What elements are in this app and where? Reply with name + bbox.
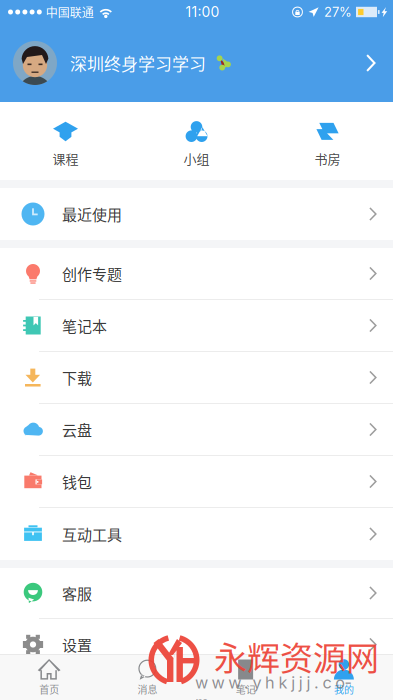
staticText: 消息 xyxy=(137,682,157,696)
staticText: 笔记本 xyxy=(62,315,107,336)
staticText: 云盘 xyxy=(62,419,92,440)
button[interactable]: 我的 xyxy=(295,654,393,700)
staticText: 设置 xyxy=(62,634,92,655)
staticText: 中国联通 xyxy=(46,3,94,21)
button[interactable]: 设置 xyxy=(0,619,393,670)
staticText: 小组 xyxy=(183,149,209,168)
button[interactable]: 课程 xyxy=(0,102,131,180)
staticText: 27% xyxy=(324,4,352,20)
button[interactable]: 小组 xyxy=(131,102,262,180)
staticText: 笔记 xyxy=(236,682,256,696)
button[interactable]: 下载 xyxy=(0,352,393,404)
staticText: 最近使用 xyxy=(62,203,122,225)
button[interactable]: 首页 xyxy=(0,654,98,700)
button[interactable]: 书房 xyxy=(262,102,393,180)
staticText: 书房 xyxy=(314,149,340,168)
button[interactable]: 笔记 xyxy=(196,654,295,700)
button[interactable]: 云盘 xyxy=(0,404,393,456)
staticText: 下载 xyxy=(62,367,92,388)
button[interactable]: 消息 xyxy=(98,654,196,700)
button[interactable]: 深圳终身学习学习 xyxy=(0,24,393,102)
staticText: 互动工具 xyxy=(62,523,122,545)
staticText: 深圳终身学习学习 xyxy=(70,51,206,75)
staticText: 首页 xyxy=(39,682,59,696)
button[interactable]: 笔记本 xyxy=(0,300,393,352)
staticText: 永辉资源网 xyxy=(214,632,379,680)
button[interactable]: 钱包 xyxy=(0,456,393,508)
button[interactable]: 创作专题 xyxy=(0,248,393,300)
staticText: 11:00 xyxy=(185,3,219,20)
button[interactable]: 互动工具 xyxy=(0,508,393,560)
button[interactable]: 最近使用 xyxy=(0,188,393,240)
staticText: 客服 xyxy=(62,582,92,604)
button[interactable]: 客服 xyxy=(0,568,393,619)
staticText: 我的 xyxy=(334,682,354,696)
staticText: 课程 xyxy=(52,149,78,168)
staticText: www.yhkjjj.com xyxy=(195,673,351,700)
staticText: 钱包 xyxy=(62,471,92,492)
staticText: 创作专题 xyxy=(62,263,122,284)
